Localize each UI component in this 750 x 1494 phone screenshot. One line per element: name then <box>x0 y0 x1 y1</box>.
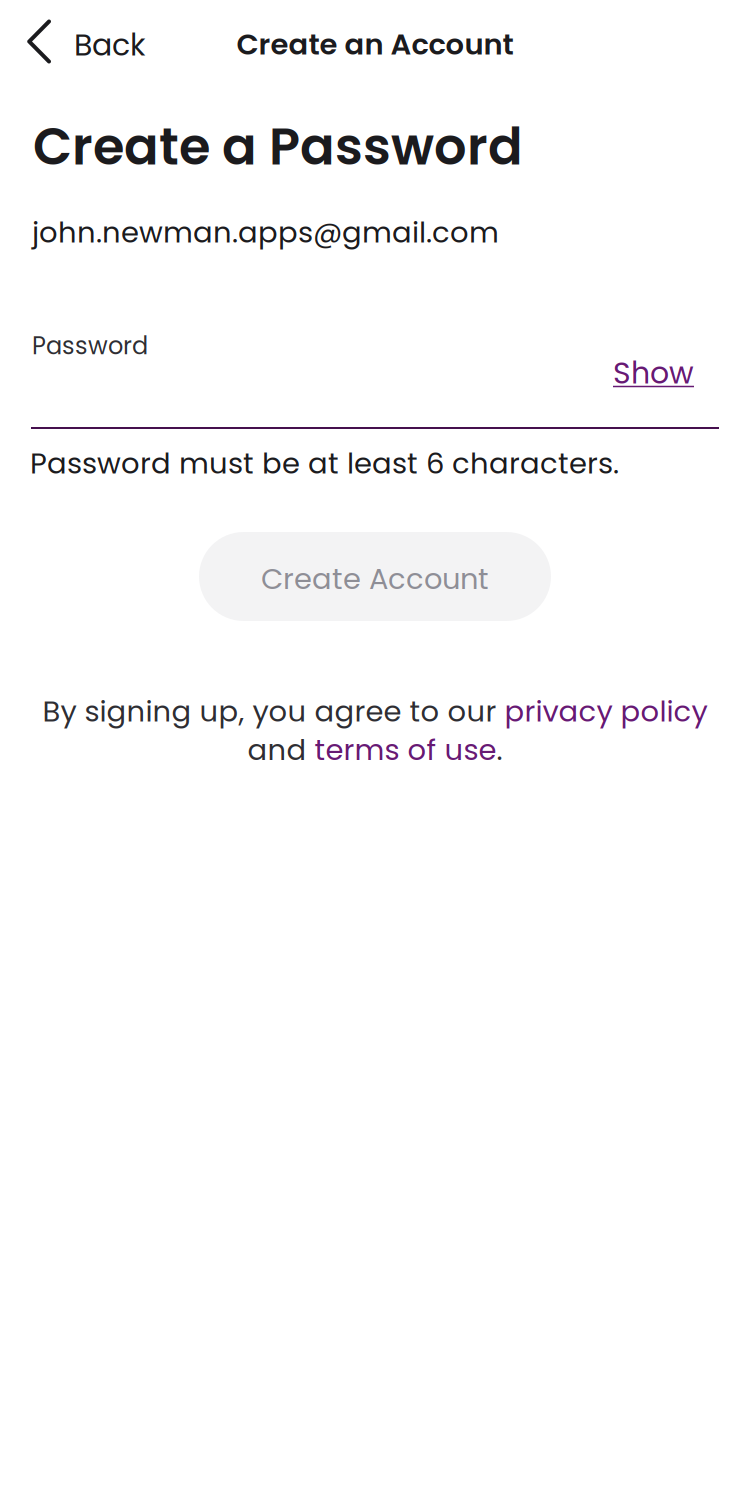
button[interactable]: privacy policy <box>504 691 707 732</box>
staticText: Create a Password <box>33 111 523 182</box>
button[interactable]: Show <box>605 346 702 400</box>
button[interactable]: terms of use <box>314 730 496 770</box>
staticText: and <box>247 730 314 770</box>
staticText: Password must be at least 6 characters. <box>30 443 619 484</box>
staticText: . <box>496 730 502 770</box>
staticText: Back <box>74 24 145 66</box>
staticText: Show <box>613 352 694 394</box>
staticText: privacy policy <box>504 691 707 732</box>
button[interactable]: Back <box>0 0 167 84</box>
staticText: Create Account <box>261 559 489 599</box>
button[interactable]: Create Account <box>199 532 551 621</box>
staticText: By signing up, you agree to our <box>42 691 504 732</box>
staticText: terms of use <box>314 730 496 770</box>
staticText: Create an Account <box>236 24 513 65</box>
staticText: john.newman.apps@gmail.com <box>32 212 499 253</box>
staticText: Password <box>32 329 148 363</box>
